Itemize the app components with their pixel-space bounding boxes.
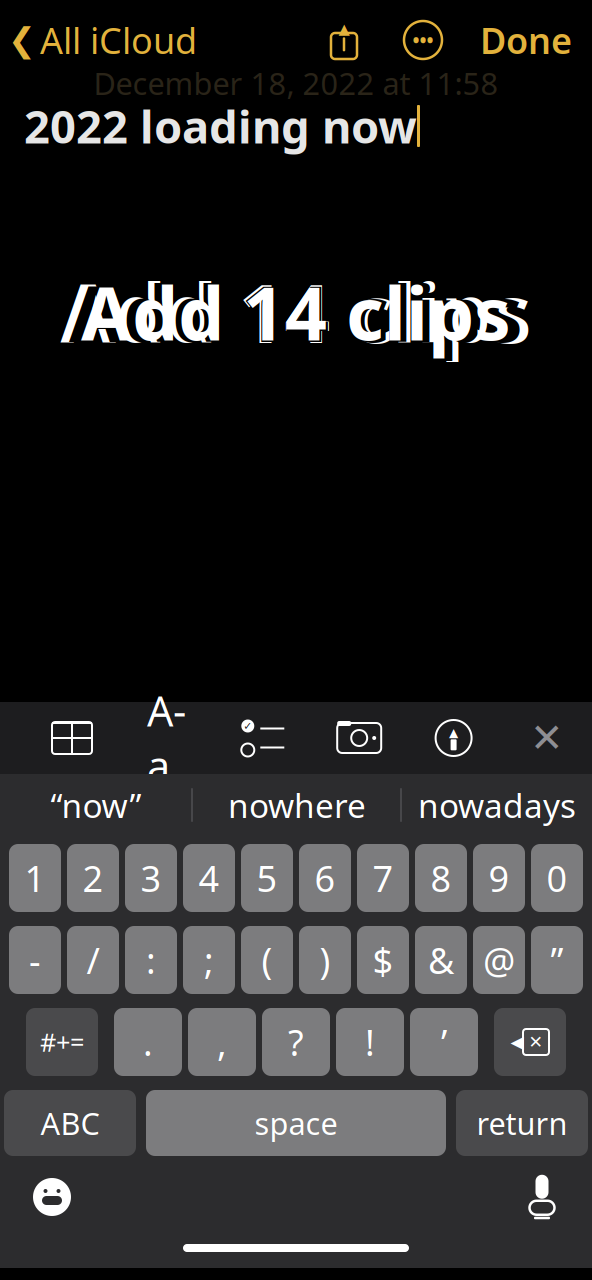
staticText: ✓ <box>243 720 252 732</box>
staticText: ✕ <box>530 715 564 761</box>
staticText: nowadays <box>418 783 576 827</box>
button[interactable]: Table <box>50 720 94 756</box>
staticText: ✕ <box>528 1032 543 1052</box>
staticText: - <box>29 936 41 984</box>
button[interactable]: 3 <box>125 844 177 912</box>
staticText: & <box>428 936 454 984</box>
staticText: 7 <box>372 854 393 902</box>
button[interactable]: nowadays <box>402 774 592 836</box>
staticText: ) <box>319 936 330 984</box>
button[interactable]: / <box>67 926 119 994</box>
button[interactable]: return <box>456 1090 588 1156</box>
button[interactable]: ’ <box>410 1008 478 1076</box>
staticText: Done <box>480 16 572 64</box>
staticText: ▲ <box>449 726 458 739</box>
staticText: Add 14 clips <box>81 263 511 361</box>
staticText: 6 <box>314 854 335 902</box>
staticText: ◀ <box>510 1032 523 1052</box>
staticText: / <box>86 936 99 984</box>
staticText: ” <box>550 936 563 984</box>
staticText: All iCloud <box>40 16 197 64</box>
button[interactable]: 9 <box>473 844 525 912</box>
button[interactable]: ” <box>531 926 583 994</box>
staticText: : <box>146 936 156 984</box>
button[interactable]: space <box>146 1090 446 1156</box>
button[interactable]: 7 <box>357 844 409 912</box>
button[interactable]: @ <box>473 926 525 994</box>
button[interactable]: Emoji <box>30 1175 74 1219</box>
button[interactable]: Camera <box>335 720 383 756</box>
button[interactable]: 4 <box>183 844 235 912</box>
button[interactable]: ? <box>262 1008 330 1076</box>
staticText: ABC <box>40 1103 99 1143</box>
staticText: space <box>254 1103 337 1143</box>
staticText: 2 <box>82 854 103 902</box>
button[interactable]: 8 <box>415 844 467 912</box>
button[interactable]: 2 <box>67 844 119 912</box>
staticText: “now” <box>50 783 141 827</box>
staticText: Aa <box>147 683 186 793</box>
button[interactable]: nowhere <box>192 774 402 836</box>
button[interactable]: More <box>400 17 446 63</box>
staticText: Add 14 clips <box>60 259 531 365</box>
button[interactable]: & <box>415 926 467 994</box>
button[interactable]: Dictate <box>520 1171 564 1223</box>
staticText: ❮ <box>8 21 36 59</box>
staticText: nowhere <box>228 783 366 827</box>
staticText: 4 <box>198 854 219 902</box>
staticText: 9 <box>488 854 509 902</box>
button[interactable]: Done <box>472 16 580 64</box>
button[interactable]: 5 <box>241 844 293 912</box>
staticText: ! <box>365 1018 375 1066</box>
staticText: ( <box>261 936 272 984</box>
staticText: 0 <box>546 854 567 902</box>
staticText: . <box>143 1018 153 1066</box>
staticText: ? <box>288 1018 304 1066</box>
staticText: , <box>217 1018 227 1066</box>
button[interactable]: $ <box>357 926 409 994</box>
button[interactable]: Text format <box>142 718 190 758</box>
button[interactable]: 6 <box>299 844 351 912</box>
staticText: 3 <box>140 854 161 902</box>
button[interactable]: #+= <box>26 1008 98 1076</box>
staticText: December 18, 2022 at 11:58 <box>93 63 498 103</box>
staticText: @ <box>483 936 515 984</box>
button[interactable]: ) <box>299 926 351 994</box>
button[interactable]: 0 <box>531 844 583 912</box>
button[interactable]: ! <box>336 1008 404 1076</box>
staticText: 8 <box>430 854 451 902</box>
staticText: ’ <box>441 1018 447 1066</box>
button[interactable]: Markup <box>432 718 476 758</box>
button[interactable]: Close <box>524 716 570 760</box>
button[interactable]: 1 <box>9 844 61 912</box>
staticText: ▲ <box>338 21 349 37</box>
staticText: ••• <box>412 28 433 52</box>
button[interactable]: Checklist <box>239 720 287 756</box>
button[interactable]: . <box>114 1008 182 1076</box>
staticText: ; <box>204 936 214 984</box>
button[interactable]: ❮ <box>0 16 207 64</box>
button[interactable]: ( <box>241 926 293 994</box>
button[interactable]: : <box>125 926 177 994</box>
staticText: 5 <box>256 854 277 902</box>
button[interactable]: - <box>9 926 61 994</box>
button[interactable]: , <box>188 1008 256 1076</box>
button[interactable]: Delete <box>494 1008 566 1076</box>
button[interactable]: ABC <box>4 1090 136 1156</box>
staticText: return <box>476 1103 567 1143</box>
staticText: Add 14 clips <box>69 261 523 363</box>
staticText: 1 <box>24 854 45 902</box>
staticText: 2022 loading now <box>24 96 417 156</box>
button[interactable]: “now” <box>0 774 192 836</box>
staticText: $ <box>372 936 393 984</box>
button[interactable]: ; <box>183 926 235 994</box>
button[interactable]: Share <box>326 20 362 60</box>
staticText: #+= <box>40 1025 84 1059</box>
